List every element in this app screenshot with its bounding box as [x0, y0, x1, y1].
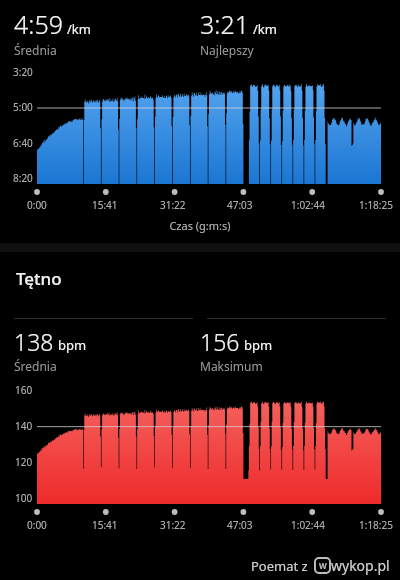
- staticText: 15:41: [92, 198, 118, 212]
- staticText: Najlepszy: [200, 42, 254, 58]
- staticText: Średnia: [14, 358, 57, 374]
- staticText: 140: [15, 419, 33, 433]
- staticText: bpm: [244, 336, 273, 354]
- button[interactable]: 138: [14, 326, 200, 374]
- staticText: 47:03: [227, 198, 253, 212]
- staticText: 6:40: [13, 136, 33, 150]
- staticText: 100: [15, 491, 33, 505]
- staticText: 160: [15, 383, 33, 397]
- staticText: bpm: [58, 336, 87, 354]
- staticText: 1:02:44: [291, 518, 325, 532]
- staticText: Czas (g:m:s): [0, 218, 400, 233]
- staticText: W: [319, 560, 327, 571]
- staticText: 156: [200, 326, 240, 357]
- staticText: 3:21: [200, 7, 249, 41]
- staticText: wykop.pl: [331, 556, 390, 575]
- staticText: 1:02:44: [291, 198, 325, 212]
- staticText: 31:22: [160, 518, 186, 532]
- button[interactable]: 4:59: [14, 7, 200, 58]
- staticText: 3:20: [13, 65, 33, 79]
- staticText: 1:18:25: [359, 198, 393, 212]
- staticText: 0:00: [27, 198, 47, 212]
- staticText: 5:00: [13, 100, 33, 114]
- staticText: 31:22: [160, 198, 186, 212]
- button[interactable]: 156: [200, 326, 386, 374]
- staticText: 8:20: [13, 171, 33, 185]
- staticText: 47:03: [227, 518, 253, 532]
- staticText: 1:18:25: [359, 518, 393, 532]
- staticText: 0:00: [27, 518, 47, 532]
- staticText: 120: [15, 455, 33, 469]
- staticText: 138: [14, 326, 54, 357]
- button[interactable]: 3:21: [200, 7, 386, 58]
- staticText: Średnia: [14, 42, 57, 58]
- other: wykop.pl logo: [315, 558, 330, 573]
- staticText: 15:41: [92, 518, 118, 532]
- staticText: Poemat z: [251, 557, 308, 575]
- staticText: Maksimum: [200, 358, 263, 374]
- staticText: /km: [253, 20, 277, 38]
- staticText: /km: [67, 20, 91, 38]
- button[interactable]: Tętno: [16, 267, 62, 290]
- staticText: 4:59: [14, 7, 63, 41]
